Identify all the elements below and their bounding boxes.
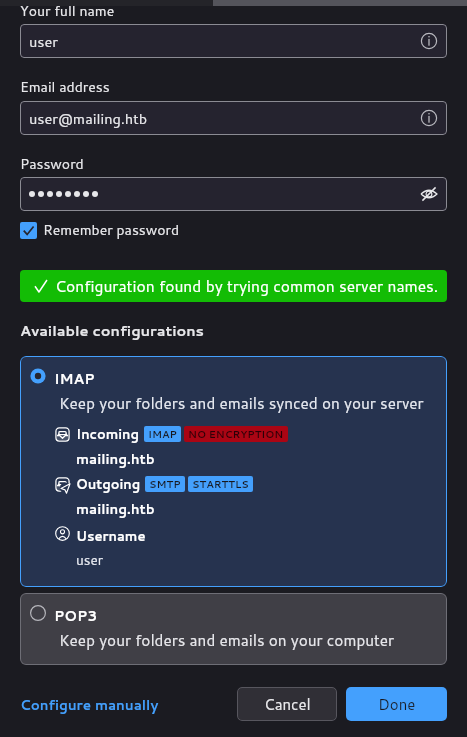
staticText: SMTP [149, 477, 181, 491]
button[interactable]: POP3 [20, 593, 447, 665]
staticText: Configuration found by trying common ser… [55, 275, 439, 297]
staticText: Keep your folders and emails synced on y… [59, 392, 424, 414]
staticText: user [76, 550, 103, 569]
staticText: Password [20, 154, 84, 174]
staticText: Cancel [264, 694, 311, 715]
staticText: Keep your folders and emails on your com… [59, 629, 395, 651]
button[interactable]: Hide password [419, 184, 439, 204]
staticText: IMAP [54, 369, 95, 389]
staticText: Done [378, 694, 416, 715]
button[interactable]: Cancel [237, 687, 337, 721]
button[interactable]: Hide password [20, 177, 447, 211]
staticText: NO ENCRYPTION [188, 427, 284, 441]
button[interactable]: user [20, 24, 447, 58]
staticText: mailing.htb [76, 499, 155, 518]
staticText: Configure manually [20, 695, 159, 714]
staticText: IMAP [148, 427, 177, 441]
button[interactable]: Configure manually [20, 695, 159, 714]
staticText: Your full name [20, 1, 115, 21]
staticText: Remember password [43, 220, 180, 240]
staticText: Email address [20, 77, 110, 97]
staticText: Incoming [76, 425, 140, 443]
button[interactable]: Information [419, 108, 439, 128]
staticText: Available configurations [20, 320, 204, 341]
button[interactable]: IMAP [20, 356, 447, 587]
button[interactable]: Done [346, 687, 447, 721]
button[interactable]: Information [419, 31, 439, 51]
staticText: POP3 [54, 606, 98, 626]
staticText: Username [76, 527, 146, 545]
button[interactable]: user@mailing.htb [20, 101, 447, 135]
staticText: Outgoing [76, 475, 141, 493]
staticText: user [29, 31, 58, 52]
staticText: STARTTLS [192, 477, 249, 491]
staticText: user@mailing.htb [29, 108, 148, 129]
button[interactable]: Remember password [20, 220, 180, 240]
staticText: mailing.htb [76, 449, 155, 468]
